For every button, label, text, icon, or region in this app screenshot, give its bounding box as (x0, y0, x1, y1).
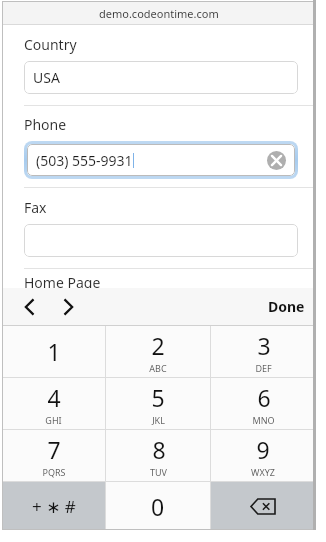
staticText: 0 (151, 491, 165, 522)
staticText: 9 (256, 434, 270, 465)
staticText: Country (24, 35, 77, 54)
button[interactable]: Symbols plus star hash (2, 482, 105, 530)
staticText: 2 (151, 330, 165, 361)
staticText: Done (268, 297, 305, 316)
button[interactable]: Done (268, 288, 305, 325)
staticText: 8 (152, 434, 166, 465)
staticText: 5 (151, 382, 165, 413)
staticText: DEF (255, 362, 272, 374)
staticText: Phone (24, 115, 67, 134)
button[interactable]: 6 (211, 378, 315, 429)
button[interactable] (24, 224, 298, 257)
staticText: WXYZ (251, 466, 275, 478)
button[interactable]: 3 (211, 326, 315, 377)
button[interactable]: (503) 555-9931 (27, 144, 295, 176)
button[interactable]: Backspace (211, 482, 315, 530)
staticText: GHI (45, 414, 62, 426)
button[interactable]: USA (24, 61, 298, 94)
staticText: 3 (257, 330, 271, 361)
staticText: PQRS (42, 466, 66, 478)
staticText: TUV (150, 466, 167, 478)
staticText: 7 (47, 434, 61, 465)
staticText: (503) 555-9931 (36, 151, 133, 170)
button[interactable]: 2 (106, 326, 210, 377)
staticText: Fax (24, 198, 47, 217)
staticText: USA (33, 68, 60, 87)
button[interactable]: 7 (2, 430, 105, 481)
staticText: 1 (47, 336, 61, 367)
button[interactable]: 0 (106, 482, 210, 530)
button[interactable]: Clear text (267, 151, 286, 170)
staticText: demo.codeontime.com (99, 6, 219, 21)
staticText: ABC (149, 362, 167, 374)
button[interactable]: 1 (2, 326, 105, 377)
staticText: Home Page (24, 273, 101, 292)
staticText: 4 (47, 382, 61, 413)
staticText: MNO (252, 414, 275, 426)
staticText: JKL (152, 414, 165, 426)
staticText: 6 (257, 382, 271, 413)
button[interactable]: 8 (106, 430, 210, 481)
staticText: + ∗ # (32, 495, 76, 518)
button[interactable]: 9 (211, 430, 315, 481)
button[interactable]: 4 (2, 378, 105, 429)
button[interactable]: 5 (106, 378, 210, 429)
button[interactable]: Previous field (15, 288, 45, 325)
button[interactable]: Next field (53, 288, 83, 325)
